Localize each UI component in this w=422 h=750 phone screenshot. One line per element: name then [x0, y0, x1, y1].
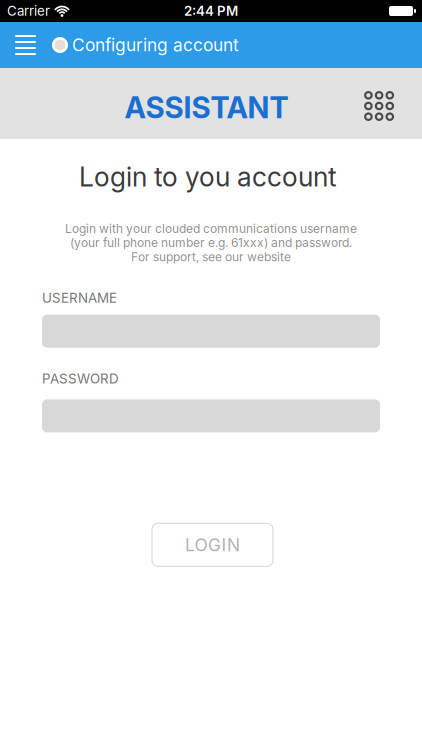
button[interactable]: Password text field	[42, 399, 380, 432]
staticText: Login with your clouded communications u…	[65, 221, 357, 236]
staticText: LOGIN	[185, 535, 240, 555]
staticText: USERNAME	[42, 290, 117, 306]
staticText: (your full phone number e.g. 61xxx) and …	[70, 236, 352, 250]
staticText: ASSISTANT	[124, 90, 288, 125]
staticText: For support, see our website	[131, 250, 291, 264]
staticText: Configuring account	[72, 35, 239, 55]
staticText: PASSWORD	[42, 371, 119, 386]
button[interactable]: Apps	[365, 87, 422, 120]
staticText: 2:44 PM	[184, 3, 238, 19]
button[interactable]: Menu	[0, 35, 52, 55]
staticText: Login to you account	[79, 161, 337, 192]
staticText: Carrier	[7, 3, 50, 19]
button[interactable]: LOGIN	[152, 523, 273, 566]
